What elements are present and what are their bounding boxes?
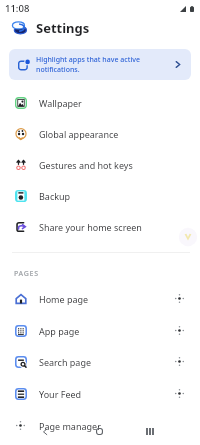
staticText: Your Feed — [39, 388, 82, 400]
button[interactable]: Search page — [0, 346, 200, 377]
button[interactable]: Page manager — [0, 410, 200, 441]
staticText: Wallpaper — [39, 97, 82, 109]
staticText: Global appearance — [39, 128, 119, 140]
button[interactable]: Wallpaper — [0, 87, 200, 118]
staticText: Highlight apps that have active notifica… — [36, 55, 175, 75]
button[interactable]: Gestures and hot keys — [0, 149, 200, 180]
other: Home — [96, 428, 103, 435]
button[interactable]: Home page — [0, 283, 200, 314]
staticText: Share your home screen — [39, 221, 142, 233]
staticText: Backup — [39, 190, 71, 202]
other: Back — [42, 428, 48, 435]
button[interactable]: Backup — [0, 180, 200, 211]
button[interactable]: Your Feed — [0, 378, 200, 409]
staticText: Home page — [39, 293, 89, 305]
staticText: App page — [39, 325, 80, 337]
button[interactable]: App page — [0, 315, 200, 346]
staticText: Gestures and hot keys — [39, 159, 133, 171]
button[interactable]: Share your home screen — [0, 211, 200, 242]
button[interactable]: Highlight apps that have active notifica… — [9, 49, 191, 80]
button[interactable]: Global appearance — [0, 118, 200, 149]
staticText: 11:08 — [5, 2, 30, 15]
staticText: Settings — [36, 19, 90, 37]
staticText: Search page — [39, 356, 92, 368]
staticText: PAGES — [14, 269, 39, 279]
staticText: Page manager — [39, 420, 101, 432]
other: Recents — [146, 428, 154, 435]
